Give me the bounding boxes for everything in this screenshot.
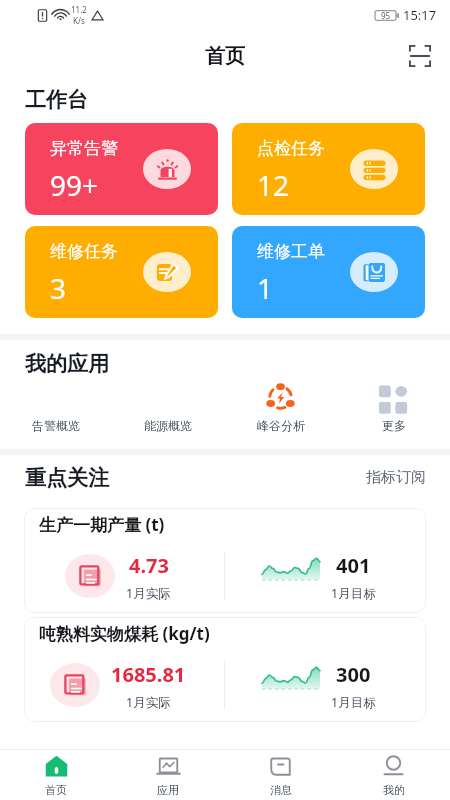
staticText: 告警概览 — [32, 418, 80, 433]
staticText: 我的应用 — [25, 351, 109, 377]
staticText: 1月实际 — [126, 585, 171, 600]
staticText: 1月实际 — [126, 694, 171, 709]
staticText: 更多 — [382, 418, 406, 433]
staticText: 1685.81 — [111, 661, 186, 688]
staticText: 4.73 — [129, 552, 169, 579]
button[interactable]: 能源概览 — [112, 383, 224, 433]
staticText: 12 — [257, 166, 290, 204]
button[interactable]: 应用 — [112, 750, 224, 800]
button[interactable]: 我的 — [337, 750, 450, 800]
staticText: 1月目标 — [331, 585, 376, 600]
staticText: 消息 — [270, 783, 292, 797]
staticText: 300 — [336, 661, 371, 688]
button[interactable]: 消息 — [224, 750, 337, 800]
staticText: 1月目标 — [331, 694, 376, 709]
staticText: 15:17 — [403, 6, 437, 24]
staticText: 重点关注 — [25, 465, 109, 491]
staticText: 我的 — [383, 783, 405, 797]
button[interactable]: 异常告警 — [25, 123, 218, 215]
button[interactable]: 首页 — [0, 750, 112, 800]
staticText: 生产一期产量 (t) — [39, 513, 165, 536]
button[interactable]: 指标订阅 — [364, 464, 428, 491]
staticText: K/s — [73, 15, 85, 26]
staticText: 应用 — [157, 783, 179, 797]
button[interactable]: 维修工单 — [232, 226, 425, 318]
staticText: 首页 — [45, 783, 67, 797]
staticText: 工作台 — [25, 87, 88, 113]
staticText: 维修工单 — [257, 241, 325, 262]
button[interactable]: 扫一扫 — [402, 38, 438, 74]
staticText: 95 — [381, 10, 391, 21]
staticText: 3 — [50, 269, 67, 307]
staticText: 点检任务 — [257, 138, 325, 159]
staticText: 首页 — [205, 44, 245, 69]
staticText: 401 — [336, 552, 371, 579]
button[interactable]: 吨熟料实物煤耗 (kg/t) — [24, 617, 426, 722]
button[interactable]: 峰谷分析 — [224, 383, 337, 433]
staticText: 维修任务 — [50, 241, 118, 262]
staticText: 吨熟料实物煤耗 (kg/t) — [39, 622, 210, 645]
staticText: 能源概览 — [144, 418, 192, 433]
staticText: 指标订阅 — [366, 468, 426, 487]
button[interactable]: 生产一期产量 (t) — [24, 508, 426, 613]
button[interactable]: 维修任务 — [25, 226, 218, 318]
staticText: 1 — [257, 269, 274, 307]
button[interactable]: 点检任务 — [232, 123, 425, 215]
staticText: 11.2 — [71, 4, 87, 15]
button[interactable]: 更多 — [337, 383, 450, 433]
staticText: 峰谷分析 — [257, 418, 305, 433]
staticText: 异常告警 — [50, 138, 118, 159]
button[interactable]: 告警概览 — [0, 383, 112, 433]
staticText: 99+ — [50, 166, 99, 204]
